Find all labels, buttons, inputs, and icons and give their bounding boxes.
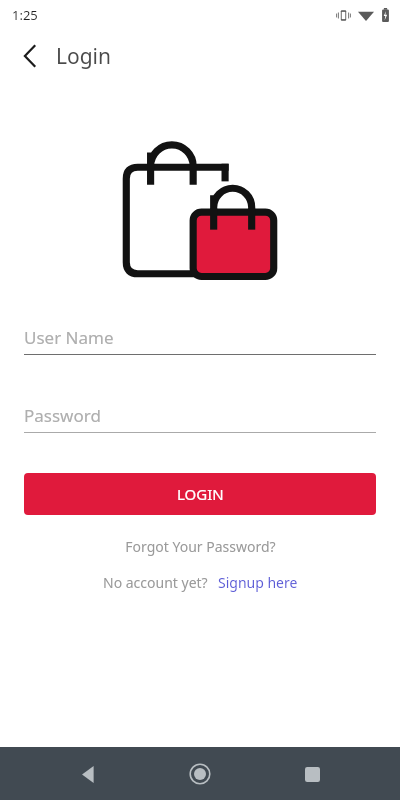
button[interactable]: User Name [24, 320, 376, 354]
staticText: Login [56, 42, 112, 71]
button[interactable]: Forgot Your Password? [24, 533, 376, 559]
button[interactable]: LOGIN [24, 473, 376, 515]
staticText: No account yet? [103, 573, 208, 592]
button[interactable]: Back [10, 36, 50, 76]
button[interactable]: Back [64, 750, 112, 798]
staticText: LOGIN [177, 484, 224, 504]
staticText: Signup here [218, 573, 298, 592]
button[interactable]: Signup here [218, 573, 298, 592]
button[interactable]: Home [176, 750, 224, 798]
staticText: Forgot Your Password? [125, 537, 276, 556]
staticText: Password [24, 404, 101, 427]
button[interactable]: Password [24, 398, 376, 432]
staticText: User Name [24, 326, 114, 349]
button[interactable]: Recent apps [288, 750, 336, 798]
staticText: 1:25 [12, 6, 38, 24]
